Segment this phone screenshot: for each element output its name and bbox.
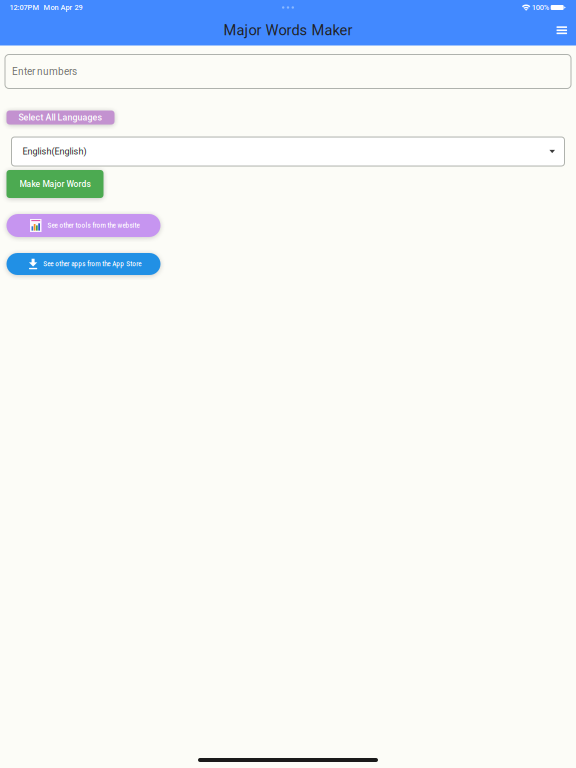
button[interactable]: Menu [548,16,576,44]
staticText: See other tools from the website [47,222,139,229]
staticText: Enter numbers [12,66,77,77]
staticText: English(English) [22,146,86,157]
button[interactable]: Make Major Words [6,170,103,198]
button[interactable]: Select All Languages [6,110,114,124]
button[interactable]: Enter numbers [5,54,571,88]
staticText: Select All Languages [18,112,102,123]
staticText: Major Words Maker [223,22,352,39]
staticText: 100% [530,3,551,12]
button[interactable]: English(English) [11,137,564,166]
staticText: Mon Apr 29 [39,3,82,12]
staticText: 12:07PM [9,3,39,12]
staticText: See other apps from the App Store [43,260,141,268]
staticText: Make Major Words [19,179,90,189]
button[interactable]: See other apps from the App Store [6,253,160,275]
button[interactable]: See other tools from the website [6,214,160,237]
